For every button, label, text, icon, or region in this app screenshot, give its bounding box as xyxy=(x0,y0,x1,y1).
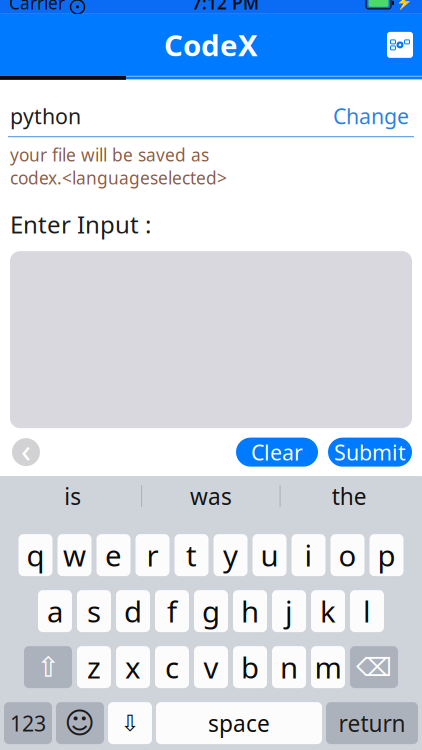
staticText: a xyxy=(47,592,63,631)
button[interactable]: b xyxy=(233,646,267,688)
staticText: r xyxy=(146,536,158,575)
button[interactable]: n xyxy=(272,646,306,688)
button[interactable]: q xyxy=(18,534,52,576)
button[interactable]: p xyxy=(369,534,403,576)
staticText: was xyxy=(190,481,232,511)
staticText: t xyxy=(186,536,197,575)
staticText: ⌫ xyxy=(356,653,392,681)
staticText: 7:12 PM xyxy=(192,0,259,14)
staticText: 123 xyxy=(10,709,46,737)
staticText: g xyxy=(202,592,220,631)
staticText: z xyxy=(87,648,101,687)
button[interactable]: c xyxy=(155,646,189,688)
staticText: is xyxy=(64,481,81,511)
staticText: j xyxy=(285,592,293,631)
staticText: x xyxy=(125,648,141,687)
button[interactable]: Dictation xyxy=(108,702,152,744)
staticText: e xyxy=(105,536,122,575)
button[interactable]: w xyxy=(57,534,91,576)
staticText: h xyxy=(241,592,259,631)
button[interactable]: is xyxy=(4,476,141,516)
button[interactable]: x xyxy=(116,646,150,688)
staticText: n xyxy=(280,648,298,687)
button[interactable]: k xyxy=(311,590,345,632)
staticText: ⚡ xyxy=(396,0,413,10)
staticText: y xyxy=(223,536,238,575)
button[interactable]: Change xyxy=(330,100,412,132)
staticText: Enter Input : xyxy=(10,208,151,240)
staticText: ⇧ xyxy=(36,651,59,683)
button[interactable]: j xyxy=(272,590,306,632)
button[interactable]: l xyxy=(350,590,384,632)
button[interactable]: 123 xyxy=(4,702,52,744)
staticText: u xyxy=(260,536,278,575)
button[interactable]: Submit xyxy=(328,438,412,467)
staticText: m xyxy=(314,648,341,687)
button[interactable]: Clear xyxy=(236,438,318,467)
button[interactable]: a xyxy=(38,590,72,632)
button[interactable]: m xyxy=(311,646,345,688)
staticText: ⇩ xyxy=(120,710,139,736)
staticText: d xyxy=(124,592,142,631)
button[interactable]: Back xyxy=(10,436,42,468)
staticText: i xyxy=(304,536,312,575)
button[interactable]: return xyxy=(326,702,418,744)
staticText: o xyxy=(338,536,356,575)
staticText: s xyxy=(87,592,101,631)
button[interactable]: g xyxy=(194,590,228,632)
button[interactable]: d xyxy=(116,590,150,632)
staticText: CodeX xyxy=(164,25,258,64)
button[interactable]: v xyxy=(194,646,228,688)
staticText: f xyxy=(167,592,177,631)
button[interactable]: r xyxy=(135,534,169,576)
button[interactable]: s xyxy=(77,590,111,632)
staticText: Clear xyxy=(251,438,303,466)
button[interactable]: Delete xyxy=(350,646,398,688)
button[interactable]: z xyxy=(77,646,111,688)
staticText: p xyxy=(377,536,395,575)
staticText: c xyxy=(165,648,179,687)
staticText: space xyxy=(208,708,270,738)
button[interactable]: h xyxy=(233,590,267,632)
staticText: python xyxy=(10,102,81,130)
button[interactable]: the xyxy=(281,476,418,516)
staticText: k xyxy=(320,592,336,631)
button[interactable]: space xyxy=(156,702,322,744)
button[interactable]: Settings xyxy=(378,23,422,67)
staticText: Change xyxy=(333,102,409,130)
staticText: ‹ xyxy=(21,429,31,471)
staticText: q xyxy=(26,536,44,575)
button[interactable]: y xyxy=(213,534,247,576)
button[interactable]: f xyxy=(155,590,189,632)
staticText: return xyxy=(338,708,405,738)
button[interactable]: e xyxy=(96,534,130,576)
staticText: w xyxy=(63,536,86,575)
button[interactable]: u xyxy=(252,534,286,576)
staticText: b xyxy=(241,648,259,687)
button[interactable]: Emoji xyxy=(56,702,104,744)
button[interactable]: i xyxy=(291,534,325,576)
staticText: Carrier xyxy=(9,0,65,14)
button[interactable]: Shift xyxy=(24,646,72,688)
staticText: Submit xyxy=(334,438,406,466)
button[interactable]: o xyxy=(330,534,364,576)
button[interactable]: t xyxy=(174,534,208,576)
staticText: l xyxy=(363,592,371,631)
staticText: v xyxy=(203,648,218,687)
staticText: your file will be saved as codex.<langua… xyxy=(10,143,227,189)
button[interactable]: was xyxy=(142,476,280,516)
staticText: the xyxy=(332,481,367,511)
staticText: ☺ xyxy=(64,706,95,740)
